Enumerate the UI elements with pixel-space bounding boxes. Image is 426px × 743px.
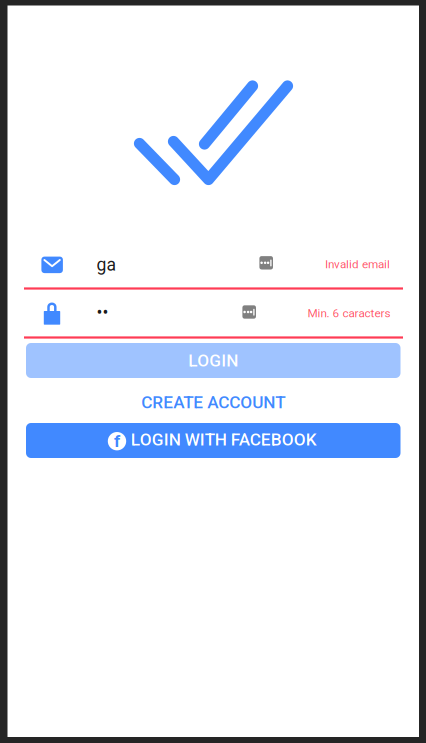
button[interactable]: f <box>26 423 400 458</box>
staticText: LOGIN <box>188 350 238 371</box>
staticText: LOGIN WITH FACEBOOK <box>131 429 317 450</box>
staticText: •• <box>96 302 108 323</box>
button[interactable]: CREATE ACCOUNT <box>26 389 400 415</box>
staticText: CREATE ACCOUNT <box>141 392 285 412</box>
staticText: f <box>114 431 120 451</box>
staticText: Min. 6 caracters <box>307 306 390 320</box>
button[interactable]: LOGIN <box>26 343 400 378</box>
staticText: ga <box>96 254 116 275</box>
staticText: Invalid email <box>325 257 390 271</box>
